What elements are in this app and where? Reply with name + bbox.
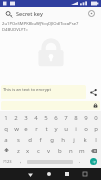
button[interactable]: m: [76, 145, 87, 156]
staticText: Secret key: [16, 10, 43, 17]
button[interactable]: x: [23, 145, 33, 156]
button[interactable]: o: [81, 123, 91, 134]
button[interactable]: g: [46, 134, 57, 145]
staticText: D4BUDVLYT=: [2, 27, 28, 33]
staticText: x: [26, 147, 30, 155]
button[interactable]: 2: [11, 112, 21, 123]
staticText: ,: [20, 158, 22, 165]
button[interactable]: Backspace: [87, 145, 101, 156]
staticText: 2: [14, 114, 18, 122]
button[interactable]: u: [61, 123, 71, 134]
button[interactable]: Recents: [58, 168, 76, 180]
staticText: f: [39, 136, 42, 144]
staticText: i: [75, 125, 77, 133]
button[interactable]: Keyboard switcher: [76, 168, 94, 180]
staticText: b: [58, 147, 62, 155]
button[interactable]: c: [33, 145, 43, 156]
staticText: v: [47, 147, 51, 155]
staticText: 6: [54, 114, 58, 122]
button[interactable]: v: [43, 145, 54, 156]
staticText: r: [35, 125, 38, 133]
staticText: .: [79, 158, 81, 165]
staticText: 9: [84, 114, 88, 122]
button[interactable]: h: [57, 134, 68, 145]
staticText: 7: [64, 114, 68, 122]
button[interactable]: This is an text to encrypt: [1, 85, 86, 99]
staticText: p: [94, 125, 98, 133]
button[interactable]: z: [13, 145, 23, 156]
staticText: h: [61, 136, 65, 144]
staticText: 3: [24, 114, 28, 122]
button[interactable]: Home: [40, 168, 58, 180]
button[interactable]: Secret key: [4, 9, 14, 19]
button[interactable]: 0: [91, 112, 101, 123]
button[interactable]: Share: [86, 85, 100, 99]
button[interactable]: ,: [15, 156, 26, 167]
staticText: ?123: [3, 159, 12, 164]
staticText: w: [14, 125, 19, 133]
staticText: 0: [94, 114, 98, 122]
staticText: s: [17, 136, 20, 144]
button[interactable]: e: [21, 123, 31, 134]
button[interactable]: l: [90, 134, 101, 145]
staticText: c: [37, 147, 40, 155]
staticText: o: [84, 125, 88, 133]
button[interactable]: n: [65, 145, 76, 156]
button[interactable]: Space: [27, 157, 73, 166]
staticText: e: [24, 125, 28, 133]
button[interactable]: 7: [61, 112, 71, 123]
staticText: z: [17, 147, 20, 155]
staticText: q: [4, 125, 8, 133]
staticText: a: [4, 136, 8, 144]
button[interactable]: Help: [86, 8, 97, 19]
staticText: k: [83, 136, 87, 144]
button[interactable]: f: [35, 134, 46, 145]
button[interactable]: 9: [81, 112, 91, 123]
button[interactable]: q: [0, 123, 11, 134]
staticText: l: [95, 136, 97, 144]
staticText: n: [69, 147, 73, 155]
button[interactable]: 4: [31, 112, 41, 123]
staticText: 4: [34, 114, 38, 122]
button[interactable]: r: [31, 123, 41, 134]
button[interactable]: t: [41, 123, 51, 134]
button[interactable]: p: [91, 123, 101, 134]
button[interactable]: Back: [21, 168, 40, 180]
staticText: t: [45, 125, 48, 133]
button[interactable]: Shift: [0, 145, 13, 156]
button[interactable]: 1: [0, 112, 11, 123]
staticText: 1: [4, 114, 8, 122]
staticText: 2u1POeSMPK8kuWJYcqOJlOdlTocaPse7: [2, 21, 79, 27]
button[interactable]: [1, 101, 100, 110]
button[interactable]: y: [51, 123, 61, 134]
button[interactable]: b: [54, 145, 65, 156]
button[interactable]: Enter: [85, 156, 101, 167]
button[interactable]: k: [79, 134, 90, 145]
button[interactable]: d: [24, 134, 35, 145]
staticText: 8: [74, 114, 78, 122]
staticText: m: [79, 147, 85, 155]
button[interactable]: 8: [71, 112, 81, 123]
staticText: d: [28, 136, 32, 144]
staticText: u: [64, 125, 68, 133]
staticText: y: [54, 125, 58, 133]
button[interactable]: w: [11, 123, 21, 134]
button[interactable]: 3: [21, 112, 31, 123]
button[interactable]: 6: [51, 112, 61, 123]
staticText: 5: [44, 114, 48, 122]
button[interactable]: 5: [41, 112, 51, 123]
button[interactable]: i: [71, 123, 81, 134]
button[interactable]: s: [12, 134, 24, 145]
staticText: This is an text to encrypt: [3, 87, 51, 93]
button[interactable]: .: [74, 156, 85, 167]
staticText: j: [73, 136, 75, 144]
button[interactable]: j: [68, 134, 79, 145]
button[interactable]: a: [0, 134, 12, 145]
button[interactable]: ?123: [0, 156, 15, 167]
staticText: g: [50, 136, 54, 144]
